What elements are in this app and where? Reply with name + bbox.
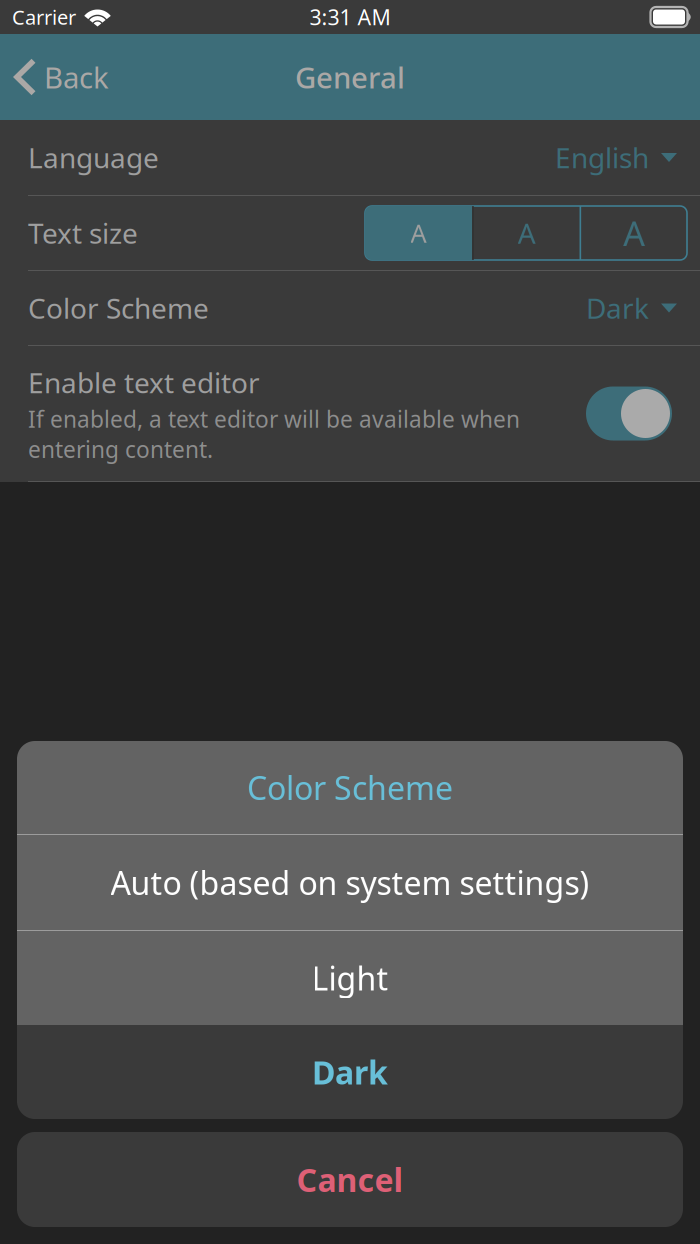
button[interactable]: Dark xyxy=(17,1025,683,1119)
staticText: Color Scheme xyxy=(247,766,453,809)
button[interactable]: A xyxy=(581,206,687,260)
button[interactable]: A xyxy=(365,206,472,260)
button[interactable]: Color Scheme xyxy=(0,271,700,345)
staticText: Cancel xyxy=(296,1158,403,1201)
staticText: Back xyxy=(44,57,109,96)
button[interactable]: Light xyxy=(17,931,683,1025)
staticText: Carrier xyxy=(12,4,76,30)
staticText: Dark xyxy=(312,1051,388,1093)
button[interactable]: A xyxy=(474,206,579,260)
staticText: A xyxy=(518,214,536,252)
staticText: If enabled, a text editor will be availa… xyxy=(28,404,520,464)
button[interactable]: Cancel xyxy=(17,1132,683,1227)
staticText: Dark xyxy=(586,289,649,327)
button[interactable]: Auto (based on system settings) xyxy=(17,835,683,930)
button[interactable]: Language xyxy=(0,120,700,195)
button[interactable]: Back xyxy=(0,34,119,120)
staticText: Auto (based on system settings) xyxy=(110,861,589,904)
staticText: English xyxy=(555,139,649,176)
staticText: Enable text editor xyxy=(28,364,260,401)
staticText: 3:31 AM xyxy=(309,3,390,31)
staticText: A xyxy=(411,216,427,250)
staticText: A xyxy=(623,210,645,256)
staticText: General xyxy=(295,57,405,96)
button[interactable]: Enable text editor xyxy=(586,386,672,440)
staticText: Color Scheme xyxy=(28,289,209,327)
staticText: Light xyxy=(311,957,388,999)
staticText: Text size xyxy=(28,214,138,252)
staticText: Language xyxy=(28,139,159,176)
